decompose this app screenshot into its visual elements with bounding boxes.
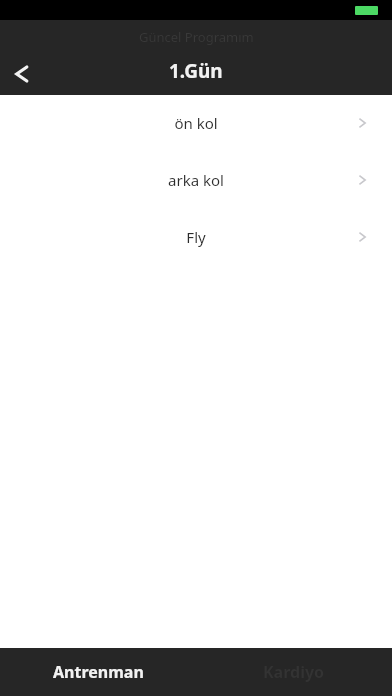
staticText: Kardiyo	[263, 661, 325, 683]
staticText: Fly	[186, 227, 206, 247]
button[interactable]: Antrenman	[0, 648, 196, 696]
button[interactable]: Fly	[10, 213, 382, 261]
staticText: Antrenman	[53, 661, 144, 683]
staticText: arka kol	[168, 170, 224, 190]
staticText: 1.Gün	[169, 58, 223, 84]
button[interactable]: ön kol	[10, 99, 382, 147]
staticText: ön kol	[174, 113, 218, 133]
staticText: Güncel Programım	[139, 28, 254, 46]
button[interactable]: arka kol	[10, 156, 382, 204]
button[interactable]: Back	[4, 56, 40, 92]
